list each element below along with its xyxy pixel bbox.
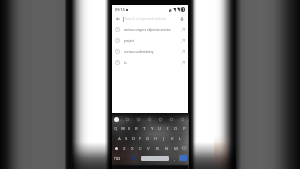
staticText: B: [156, 145, 159, 151]
staticText: C: [139, 145, 142, 151]
staticText: curious undertaking: [124, 50, 154, 54]
button[interactable]: C: [136, 143, 144, 153]
button[interactable]: Keyboard tool 2: [136, 117, 141, 122]
button[interactable]: B: [153, 143, 162, 153]
staticText: Y: [151, 125, 154, 131]
button[interactable]: Shift: [112, 143, 120, 153]
button[interactable]: J: [160, 133, 168, 143]
staticText: Z: [123, 145, 126, 151]
button[interactable]: I: [164, 123, 172, 133]
button[interactable]: O: [172, 123, 180, 133]
button[interactable]: L: [176, 133, 184, 143]
button[interactable]: N: [162, 143, 171, 153]
staticText: .: [174, 157, 175, 162]
button[interactable]: .: [171, 156, 177, 162]
button[interactable]: T: [140, 123, 148, 133]
button[interactable]: F: [137, 133, 144, 143]
staticText: Lt: [124, 61, 127, 65]
staticText: S: [125, 135, 128, 141]
button[interactable]: Keyboard tool 3: [147, 117, 152, 122]
staticText: I: [167, 125, 169, 131]
button[interactable]: project: [112, 35, 188, 46]
button[interactable]: ?123: [113, 156, 121, 162]
button[interactable]: Q: [112, 123, 119, 133]
staticText: E: [128, 125, 131, 131]
button[interactable]: H: [152, 133, 160, 143]
button[interactable]: K: [168, 133, 176, 143]
button[interactable]: curious undertaking: [112, 46, 188, 57]
button[interactable]: S: [123, 133, 130, 143]
staticText: J: [163, 135, 165, 141]
staticText: W: [121, 125, 125, 131]
staticText: D: [132, 135, 136, 141]
staticText: V: [147, 145, 150, 151]
button[interactable]: W: [119, 123, 126, 133]
button[interactable]: Emoji: [131, 155, 136, 160]
staticText: R: [135, 125, 138, 131]
button[interactable]: Space: [141, 156, 169, 161]
button[interactable]: Keyboard tool 4: [158, 117, 163, 122]
button[interactable]: Voice search: [178, 15, 186, 23]
button[interactable]: Keyboard tool 1: [125, 117, 130, 122]
staticText: H: [154, 135, 158, 141]
staticText: G: [146, 135, 150, 141]
staticText: O: [174, 125, 178, 131]
button[interactable]: Back: [114, 15, 122, 23]
staticText: Search or type web address: [125, 17, 167, 21]
button[interactable]: Keyboard tool 5: [169, 117, 174, 122]
button[interactable]: V: [144, 143, 153, 153]
staticText: X: [131, 145, 134, 151]
staticText: Q: [114, 125, 118, 131]
staticText: serious singers objective service: [124, 28, 171, 32]
staticText: 09:14: [115, 7, 125, 12]
staticText: U: [158, 125, 162, 131]
button[interactable]: Search: [179, 155, 187, 161]
staticText: A: [118, 135, 121, 141]
staticText: K: [171, 135, 174, 141]
button[interactable]: R: [133, 123, 140, 133]
staticText: M: [174, 145, 178, 151]
button[interactable]: serious singers objective service: [112, 24, 188, 35]
button[interactable]: G: [144, 133, 152, 143]
button[interactable]: M: [171, 143, 180, 153]
button[interactable]: Lt: [112, 57, 188, 68]
button[interactable]: D: [130, 133, 137, 143]
button[interactable]: Z: [120, 143, 128, 153]
button[interactable]: Keyboard tool 6: [180, 117, 185, 122]
button[interactable]: Y: [148, 123, 156, 133]
staticText: ?123: [114, 157, 121, 161]
button[interactable]: Google: [114, 117, 119, 122]
staticText: T: [143, 125, 146, 131]
staticText: P: [183, 125, 186, 131]
button[interactable]: E: [126, 123, 133, 133]
button[interactable]: P: [180, 123, 188, 133]
staticText: project: [124, 39, 135, 43]
button[interactable]: Backspace: [180, 143, 188, 153]
staticText: L: [179, 135, 182, 141]
button[interactable]: X: [128, 143, 136, 153]
staticText: N: [165, 145, 169, 151]
button[interactable]: U: [156, 123, 164, 133]
button[interactable]: A: [116, 133, 123, 143]
staticText: F: [139, 135, 142, 141]
